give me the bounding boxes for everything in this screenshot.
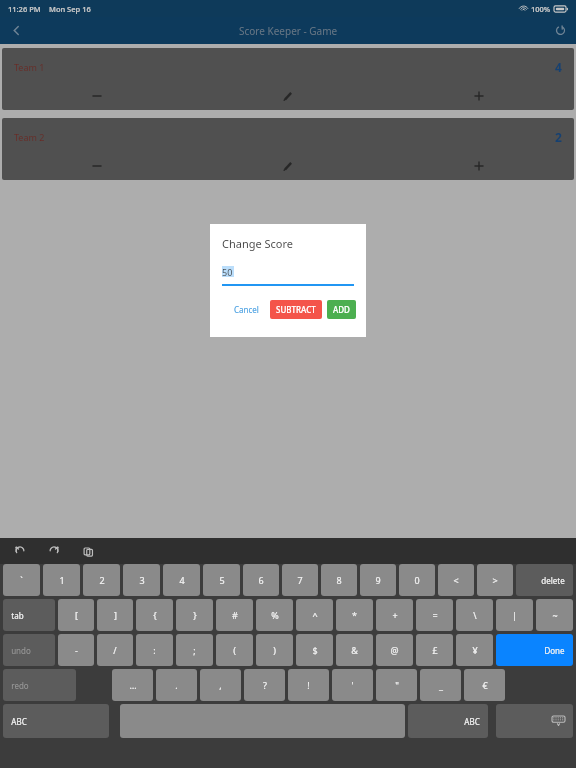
staticText: " [395, 679, 399, 691]
button[interactable]: * [336, 599, 373, 631]
button[interactable]: # [216, 599, 253, 631]
staticText: : [153, 644, 156, 656]
staticText: ' [351, 679, 354, 691]
button[interactable]: ABC [408, 704, 488, 738]
staticText: tab [11, 610, 24, 621]
staticText: ADD [333, 304, 350, 315]
button[interactable]: ? [244, 669, 285, 701]
button[interactable]: + [376, 599, 413, 631]
button[interactable]: > [477, 564, 513, 596]
button[interactable]: SUBTRACT [270, 300, 322, 319]
button[interactable]: Redo [44, 541, 64, 561]
button[interactable]: | [496, 599, 533, 631]
staticText: 6 [258, 574, 264, 586]
button[interactable]: ` [3, 564, 40, 596]
button[interactable]: ) [256, 634, 293, 666]
staticText: 2 [555, 129, 562, 145]
button[interactable]: 5 [203, 564, 240, 596]
button[interactable]: } [176, 599, 213, 631]
staticText: ! [307, 679, 310, 691]
button[interactable]: Back [0, 17, 32, 44]
button[interactable]: ' [332, 669, 373, 701]
staticText: € [482, 679, 488, 691]
button[interactable]: , [200, 669, 241, 701]
staticText: } [193, 609, 197, 621]
button[interactable]: 8 [321, 564, 357, 596]
staticText: … [129, 679, 137, 691]
button[interactable]: 0 [399, 564, 435, 596]
button[interactable]: ] [97, 599, 133, 631]
staticText: + [392, 609, 398, 621]
staticText: 4 [555, 59, 562, 75]
button[interactable]: & [336, 634, 373, 666]
button[interactable]: delete [516, 564, 573, 596]
staticText: 0 [414, 574, 420, 586]
button[interactable]: 1 [43, 564, 80, 596]
button[interactable]: Refresh [544, 17, 576, 44]
button[interactable]: Hide keyboard [496, 704, 573, 738]
button[interactable]: / [97, 634, 133, 666]
staticText: $ [312, 644, 318, 656]
button[interactable]: 7 [282, 564, 318, 596]
button[interactable]: ( [216, 634, 253, 666]
staticText: Score Keeper - Game [239, 24, 338, 38]
staticText: ] [114, 609, 117, 621]
staticText: Team 1 [14, 61, 45, 73]
staticText: ? [263, 679, 267, 691]
button[interactable]: @ [376, 634, 413, 666]
button[interactable]: Cancel [229, 300, 264, 319]
button[interactable]: £ [416, 634, 453, 666]
button[interactable]: ^ [296, 599, 333, 631]
staticText: ; [193, 644, 196, 656]
button[interactable]: ; [176, 634, 213, 666]
button[interactable]: 4 [163, 564, 200, 596]
staticText: 9 [375, 574, 381, 586]
button[interactable]: - [58, 634, 94, 666]
button[interactable]: ABC [3, 704, 109, 738]
button[interactable]: % [256, 599, 293, 631]
button[interactable]: 9 [360, 564, 396, 596]
button[interactable]: = [416, 599, 453, 631]
staticText: SUBTRACT [276, 304, 316, 315]
staticText: & [351, 644, 358, 656]
button[interactable]: 2 [83, 564, 120, 596]
button[interactable]: Paste [78, 541, 98, 561]
button[interactable]: : [136, 634, 173, 666]
staticText: Done [544, 645, 565, 656]
button[interactable]: { [136, 599, 173, 631]
button[interactable]: ¥ [456, 634, 493, 666]
staticText: 3 [139, 574, 145, 586]
button[interactable]: redo [3, 669, 76, 701]
button[interactable]: ~ [536, 599, 573, 631]
button[interactable]: € [464, 669, 505, 701]
button[interactable]: 3 [123, 564, 160, 596]
button[interactable]: Done [496, 634, 573, 666]
staticText: _ [439, 679, 443, 691]
staticText: < [453, 574, 459, 586]
staticText: Mon Sep 16 [49, 4, 91, 14]
button[interactable]: [ [58, 599, 94, 631]
button[interactable]: undo [3, 634, 55, 666]
button[interactable]: tab [3, 599, 55, 631]
button[interactable]: _ [420, 669, 461, 701]
staticText: 100% [531, 4, 551, 14]
button[interactable]: \ [456, 599, 493, 631]
button[interactable]: 6 [243, 564, 279, 596]
staticText: delete [541, 575, 565, 586]
button[interactable]: " [376, 669, 417, 701]
button[interactable]: ! [288, 669, 329, 701]
button[interactable]: < [438, 564, 474, 596]
button[interactable]: ADD [327, 300, 356, 319]
button[interactable]: … [112, 669, 153, 701]
button[interactable]: Undo [10, 541, 30, 561]
staticText: ( [233, 644, 236, 656]
button[interactable]: . [156, 669, 197, 701]
button[interactable]: $ [296, 634, 333, 666]
